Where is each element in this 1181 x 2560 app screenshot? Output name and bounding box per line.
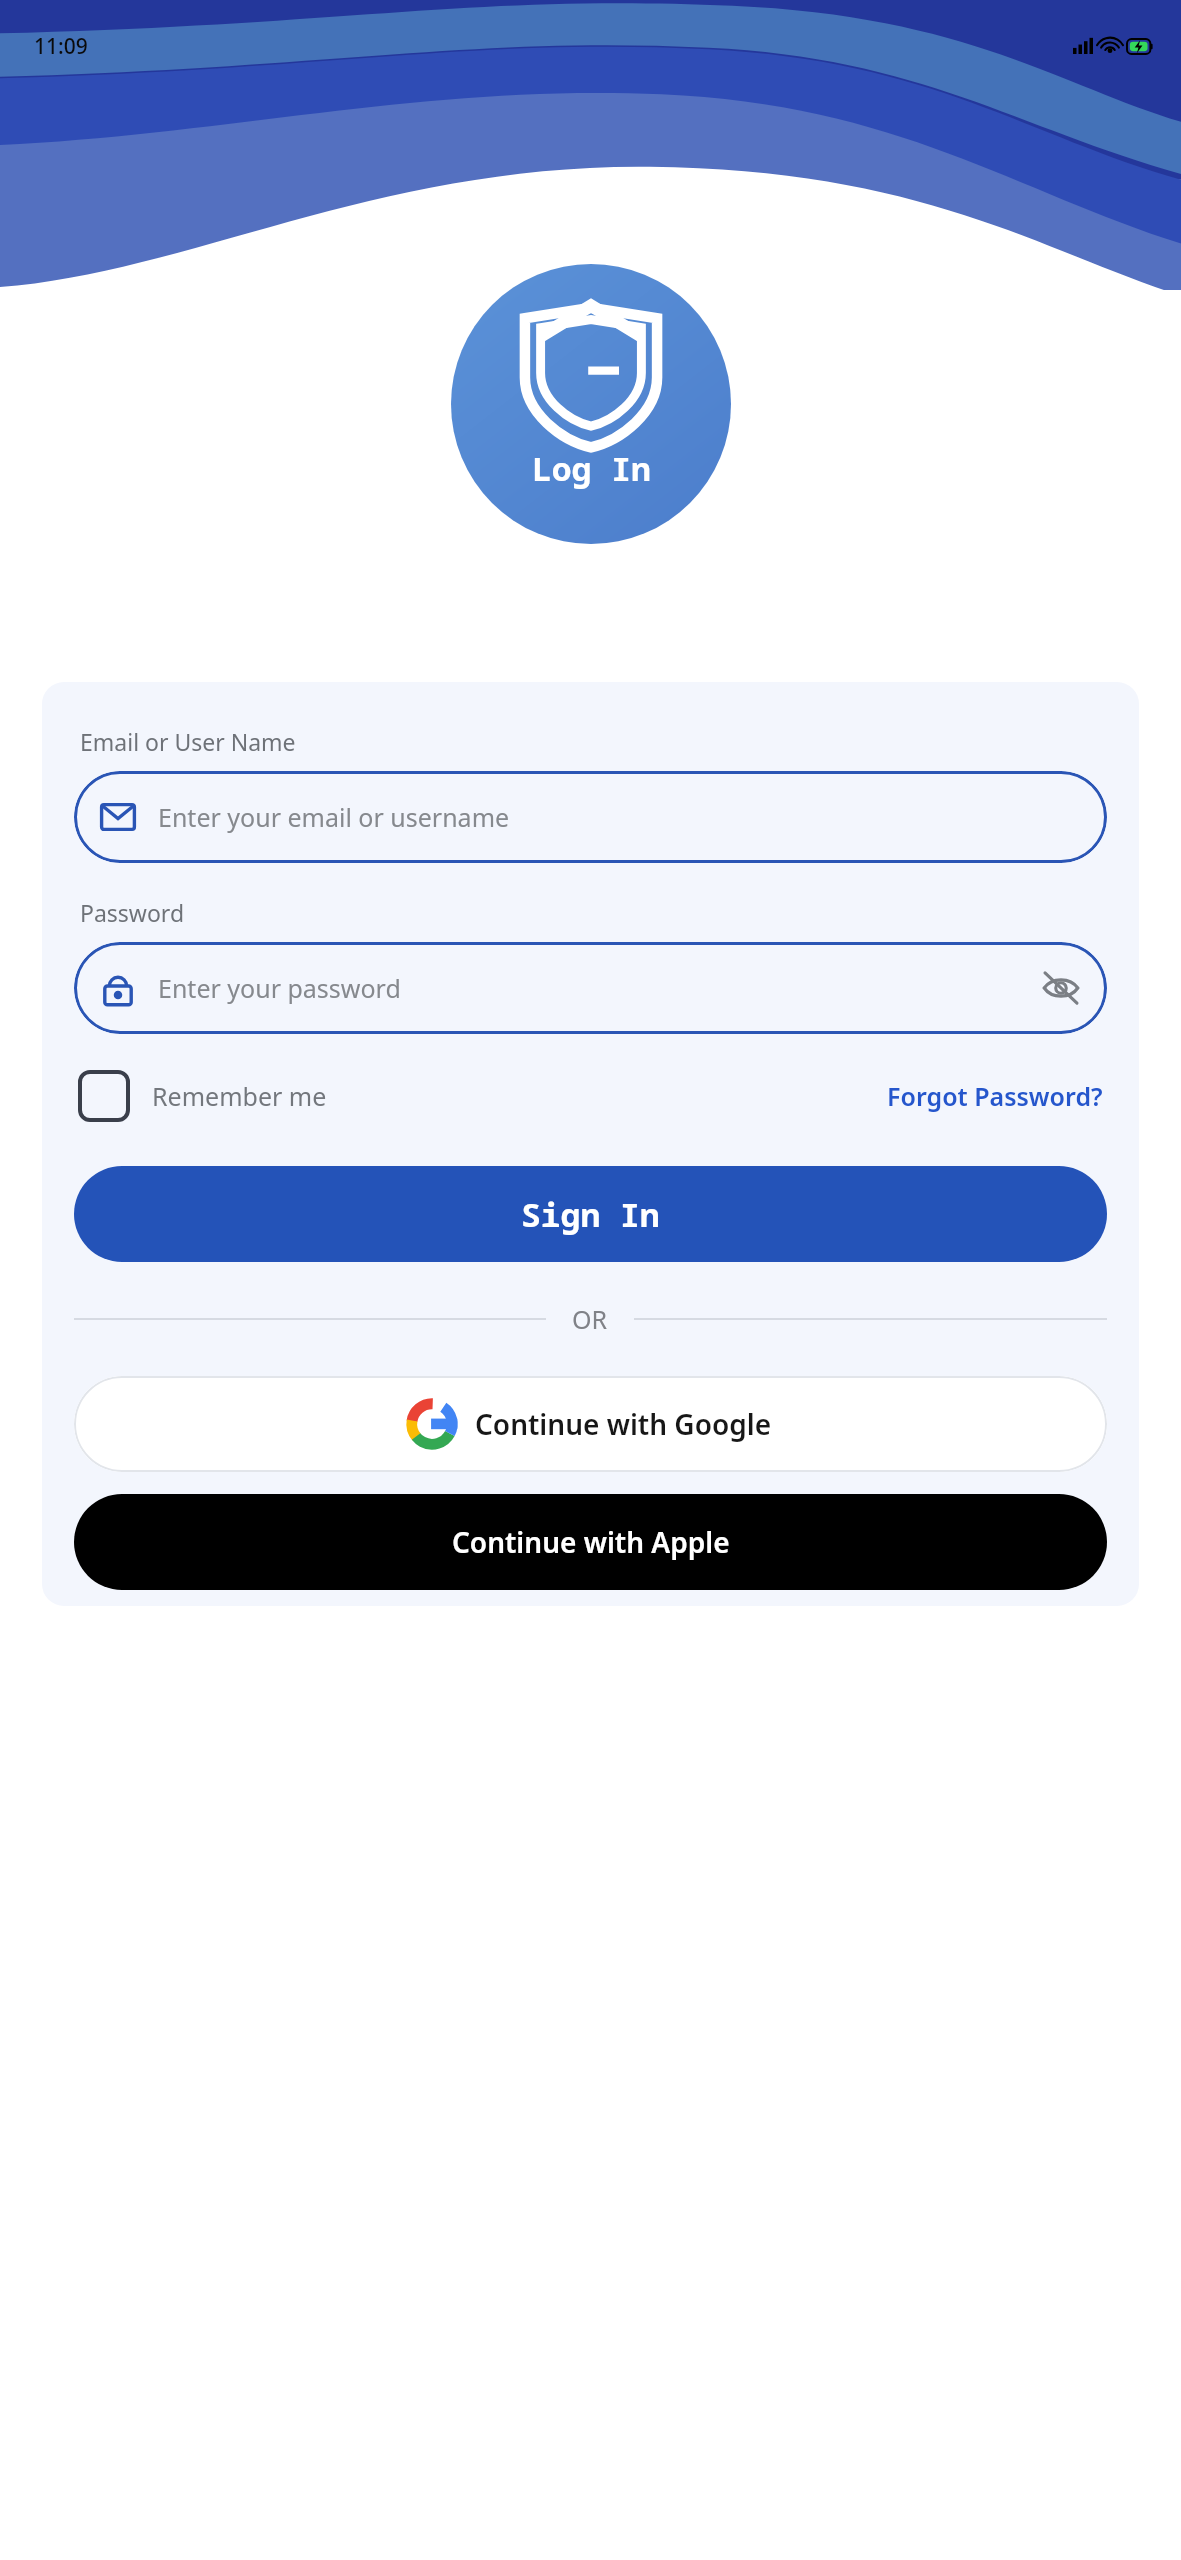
staticText: Continue with Apple — [452, 1523, 730, 1561]
button[interactable]: Continue with Google — [74, 1376, 1107, 1472]
staticText: Sign In — [521, 1192, 660, 1237]
staticText: Remember me — [152, 1079, 327, 1113]
staticText: Enter your email or username — [158, 800, 1083, 834]
button[interactable]: Forgot Password? — [887, 1079, 1103, 1113]
staticText: Forgot Password? — [887, 1079, 1103, 1113]
button[interactable]: Show password — [1039, 966, 1083, 1010]
staticText: Password — [80, 897, 185, 928]
button[interactable]: Sign In — [74, 1166, 1107, 1262]
staticText: Email or User Name — [80, 726, 296, 757]
staticText: OR — [572, 1302, 608, 1336]
button[interactable]: Continue with Apple — [74, 1494, 1107, 1590]
staticText: Log In — [532, 446, 651, 491]
button[interactable]: Enter your email or username — [74, 771, 1107, 863]
staticText: 11:09 — [34, 32, 88, 61]
staticText: Enter your password — [158, 971, 1039, 1005]
button[interactable]: App logo — [451, 264, 731, 544]
button[interactable]: Enter your password — [74, 942, 1107, 1034]
button[interactable]: Remember me — [78, 1070, 327, 1122]
staticText: Continue with Google — [475, 1405, 772, 1443]
